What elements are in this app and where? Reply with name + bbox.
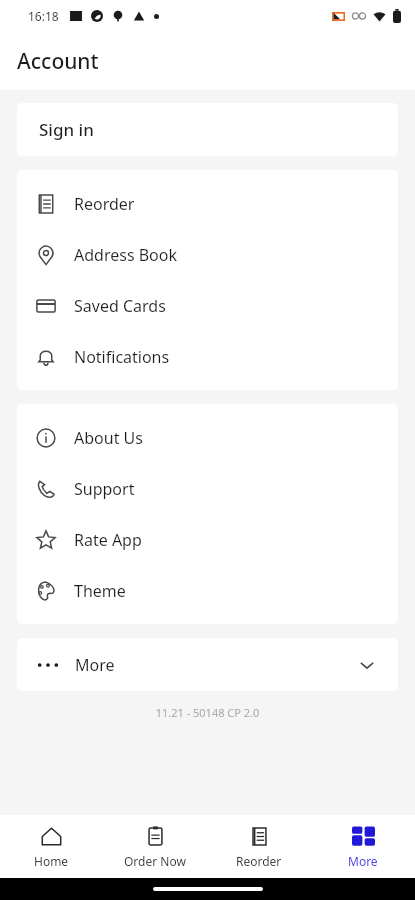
button[interactable]: Reorder <box>207 815 311 878</box>
button[interactable]: Order Now <box>103 815 207 878</box>
staticText: Notifications <box>74 346 170 368</box>
staticText: 11.21 - 50148 CP 2.0 <box>0 705 415 720</box>
button[interactable]: About Us <box>17 412 398 463</box>
button[interactable]: More <box>311 815 415 878</box>
button[interactable]: Home <box>0 815 103 878</box>
staticText: Support <box>74 478 135 500</box>
button[interactable]: Rate App <box>17 514 398 565</box>
staticText: More <box>348 853 378 869</box>
staticText: Theme <box>74 580 126 602</box>
staticText: Sign in <box>39 118 94 141</box>
staticText: About Us <box>74 427 143 449</box>
staticText: Order Now <box>124 853 186 869</box>
button[interactable]: Sign in <box>17 103 398 156</box>
staticText: Home <box>34 853 69 869</box>
staticText: Rate App <box>74 529 142 551</box>
button[interactable]: More <box>17 638 398 691</box>
staticText: Saved Cards <box>74 295 166 317</box>
button[interactable]: Address Book <box>17 229 398 280</box>
button[interactable]: Saved Cards <box>17 280 398 331</box>
staticText: Account <box>17 47 99 76</box>
button[interactable]: Support <box>17 463 398 514</box>
staticText: Address Book <box>74 244 178 266</box>
staticText: Reorder <box>74 193 135 215</box>
staticText: Reorder <box>236 853 282 869</box>
staticText: More <box>75 654 115 676</box>
staticText: 16:18 <box>28 8 59 24</box>
button[interactable]: Reorder <box>17 178 398 229</box>
button[interactable]: Theme <box>17 565 398 616</box>
button[interactable]: Notifications <box>17 331 398 382</box>
